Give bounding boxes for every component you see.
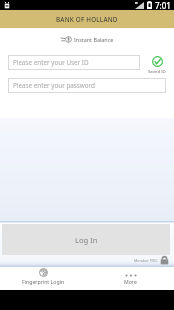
staticText: Please enter your password [13, 81, 95, 90]
staticText: Saved ID [148, 68, 166, 74]
other: Fingerprint [39, 268, 48, 277]
staticText: BANK OF HOLLAND [56, 15, 118, 24]
button[interactable]: Please enter your User ID [8, 55, 140, 70]
button[interactable]: Saved ID [148, 55, 166, 74]
staticText: More [124, 278, 137, 285]
staticText: Please enter your User ID [13, 58, 89, 67]
button[interactable]: Instant Balance [60, 34, 114, 45]
staticText: Member FDIC [134, 258, 158, 263]
staticText: 7:01 [155, 0, 171, 10]
other: More [125, 268, 137, 277]
button[interactable]: More [87, 267, 174, 290]
button[interactable]: Log In [2, 224, 170, 255]
staticText: Log In [75, 235, 98, 245]
staticText: Fingerprint Login [22, 278, 65, 285]
staticText: Instant Balance [74, 36, 114, 43]
button[interactable]: BANK OF HOLLAND [0, 10, 174, 28]
button[interactable]: Fingerprint [0, 267, 87, 290]
other: Secure [160, 255, 169, 265]
button[interactable]: Please enter your password [8, 78, 166, 93]
